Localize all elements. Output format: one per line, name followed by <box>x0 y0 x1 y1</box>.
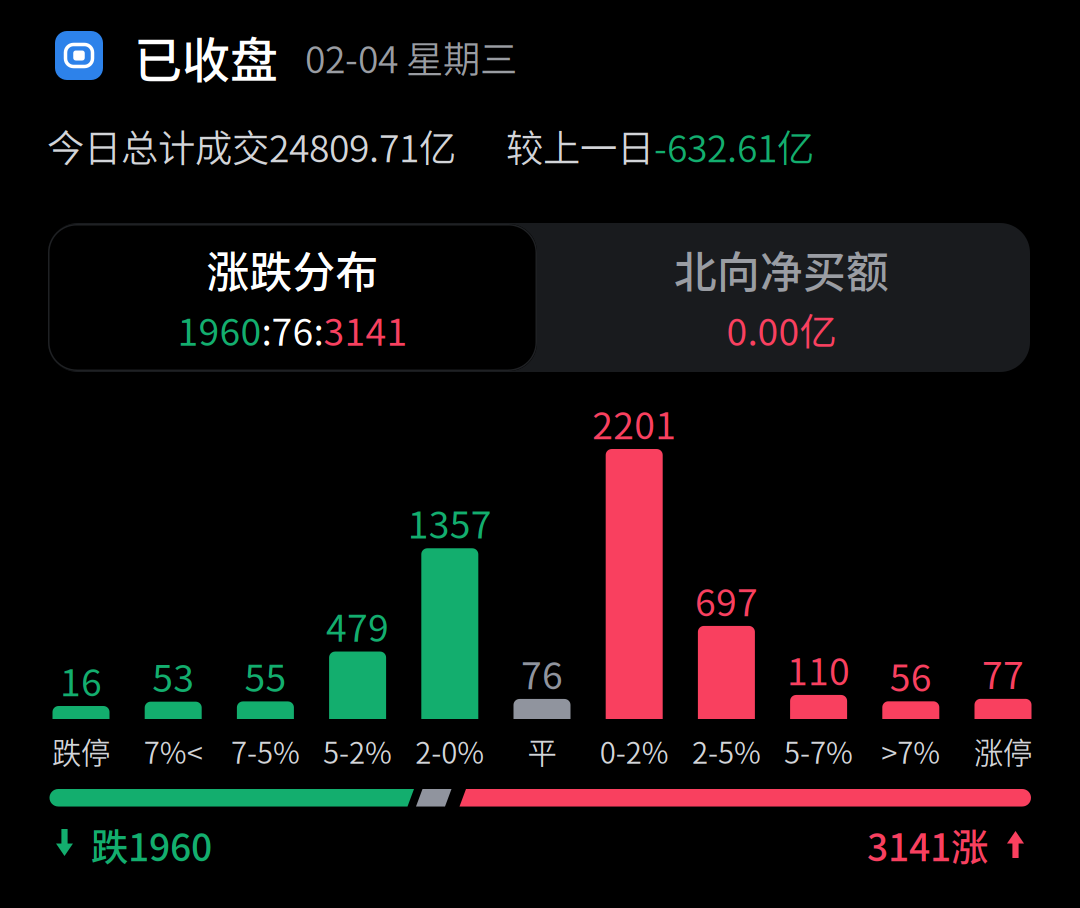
staticText: 5-2% <box>323 730 392 772</box>
staticText: 53 <box>152 649 194 703</box>
staticText: 56 <box>890 648 932 702</box>
staticText: 3141 <box>323 302 407 356</box>
staticText: 110 <box>787 642 850 696</box>
staticText: 已收盘 <box>134 22 278 91</box>
staticText: 76 <box>521 646 563 700</box>
staticText: 77 <box>982 646 1024 700</box>
staticText: 02-04 星期三 <box>305 30 517 84</box>
staticText: 7%< <box>144 730 203 772</box>
staticText: 55 <box>244 648 286 702</box>
staticText: >7% <box>881 730 940 772</box>
staticText: 697 <box>695 573 758 627</box>
button[interactable]: Market status <box>55 31 103 80</box>
staticText: 涨跌分布 <box>206 239 378 300</box>
staticText: 2201 <box>592 396 676 450</box>
staticText: 北向净买额 <box>674 239 889 300</box>
staticText: 跌停 <box>52 730 110 772</box>
staticText: 16 <box>60 653 102 707</box>
staticText: 较上一日 <box>506 119 654 173</box>
staticText: 跌1960 <box>91 818 212 872</box>
staticText: 1960 <box>177 302 261 356</box>
button[interactable]: 北向净买额 <box>537 224 1026 371</box>
button[interactable]: 涨跌分布 <box>48 224 537 371</box>
staticText: 2-5% <box>692 730 761 772</box>
staticText: 今日总计成交24809.71亿 <box>47 119 456 173</box>
staticText: 0-2% <box>600 730 669 772</box>
staticText: :76: <box>261 302 323 356</box>
staticText: 平 <box>527 730 556 772</box>
staticText: 0.00亿 <box>726 302 836 356</box>
staticText: 1357 <box>408 495 492 549</box>
staticText: 479 <box>326 598 389 653</box>
staticText: 2-0% <box>415 730 484 772</box>
staticText: -632.61亿 <box>654 119 814 173</box>
staticText: 5-7% <box>784 730 853 772</box>
staticText: 3141涨 <box>867 818 988 872</box>
staticText: 涨停 <box>974 730 1032 772</box>
staticText: 7-5% <box>231 730 300 772</box>
